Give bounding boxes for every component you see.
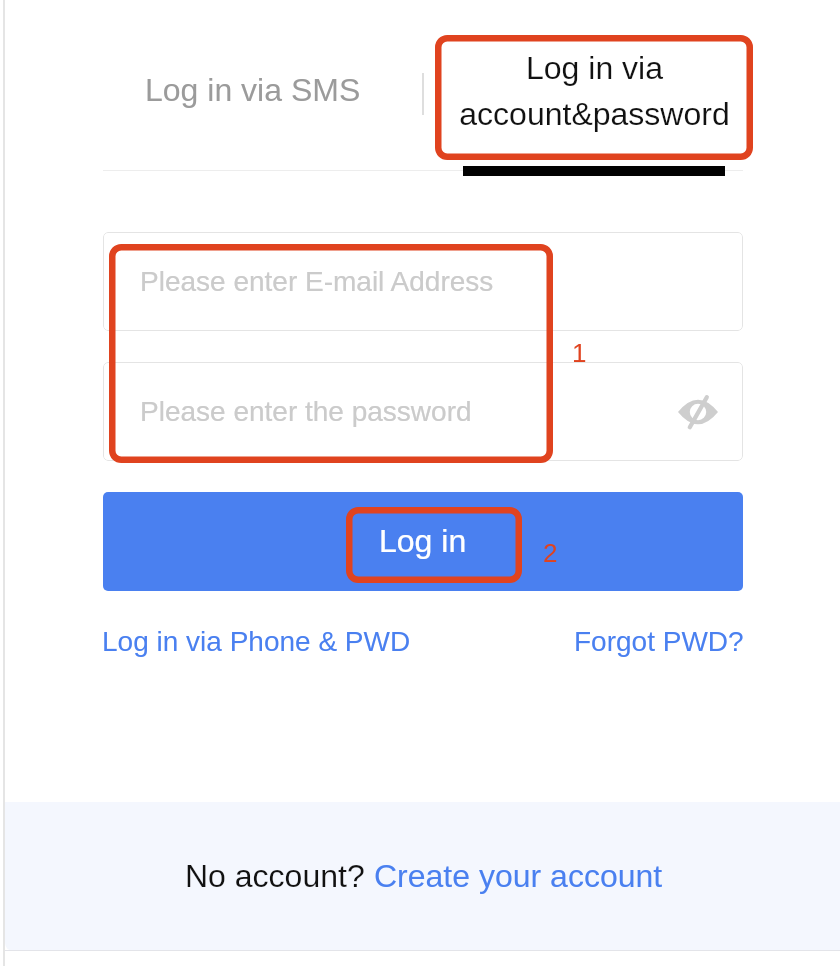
- button[interactable]: Create your account: [374, 858, 663, 894]
- staticText: 2: [543, 538, 558, 567]
- button[interactable]: Please enter E-mail Address: [103, 232, 743, 331]
- staticText: Log in: [379, 523, 467, 559]
- button[interactable]: Log in via Phone & PWD: [102, 619, 411, 663]
- staticText: Please enter the password: [140, 396, 472, 427]
- button[interactable]: Log in via account&password: [441, 41, 747, 141]
- staticText: Log in via account&password: [459, 50, 730, 132]
- button[interactable]: Please enter the password: [103, 362, 743, 461]
- staticText: Log in via Phone & PWD: [102, 626, 411, 657]
- button[interactable]: Forgot PWD?: [574, 619, 744, 663]
- staticText: Log in via SMS: [145, 72, 361, 108]
- button[interactable]: Log in via SMS: [93, 55, 412, 125]
- staticText: 1: [572, 338, 587, 367]
- staticText: Please enter E-mail Address: [140, 266, 494, 297]
- staticText: Forgot PWD?: [574, 626, 744, 657]
- staticText: Create your account: [374, 858, 663, 894]
- button[interactable]: Show password: [663, 377, 733, 447]
- staticText: No account?: [185, 858, 374, 894]
- button[interactable]: Log in: [103, 492, 743, 591]
